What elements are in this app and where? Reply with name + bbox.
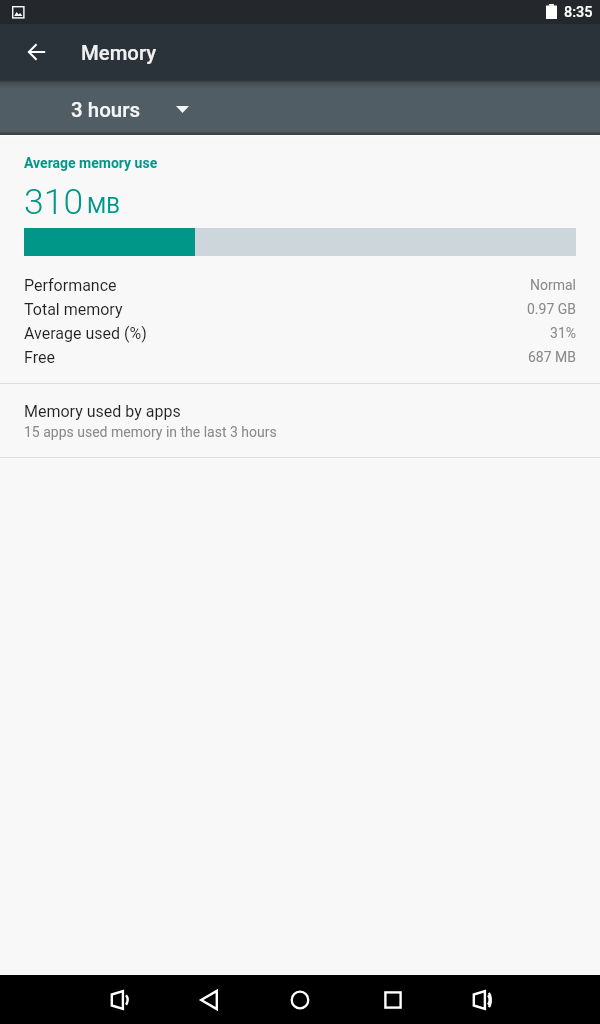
staticText: Performance (24, 276, 117, 295)
staticText: 687 MB (527, 349, 576, 365)
button[interactable]: Memory used by apps (0, 384, 600, 457)
button[interactable]: Back (179, 975, 239, 1024)
button[interactable]: Navigate up (12, 28, 60, 76)
button[interactable]: 3 hours (60, 96, 189, 120)
staticText: Memory (81, 41, 157, 65)
staticText: 3 hours (71, 98, 140, 122)
staticText: Total memory (24, 300, 123, 319)
staticText: Average memory use (24, 155, 158, 171)
staticText: Memory used by apps (24, 402, 181, 421)
staticText: 8:35 (564, 4, 593, 21)
button[interactable]: Home (270, 975, 330, 1024)
staticText: 0.97 GB (526, 301, 576, 317)
staticText: MB (87, 193, 120, 219)
staticText: Average used (%) (24, 324, 147, 343)
button[interactable]: Volume down (89, 975, 149, 1024)
staticText: Normal (529, 277, 576, 293)
staticText: 15 apps used memory in the last 3 hours (24, 424, 277, 440)
staticText: 310 (24, 181, 84, 223)
button[interactable]: Recent apps (363, 975, 423, 1024)
button[interactable]: Volume up (451, 975, 511, 1024)
staticText: Free (24, 348, 55, 367)
staticText: 31% (550, 325, 576, 341)
